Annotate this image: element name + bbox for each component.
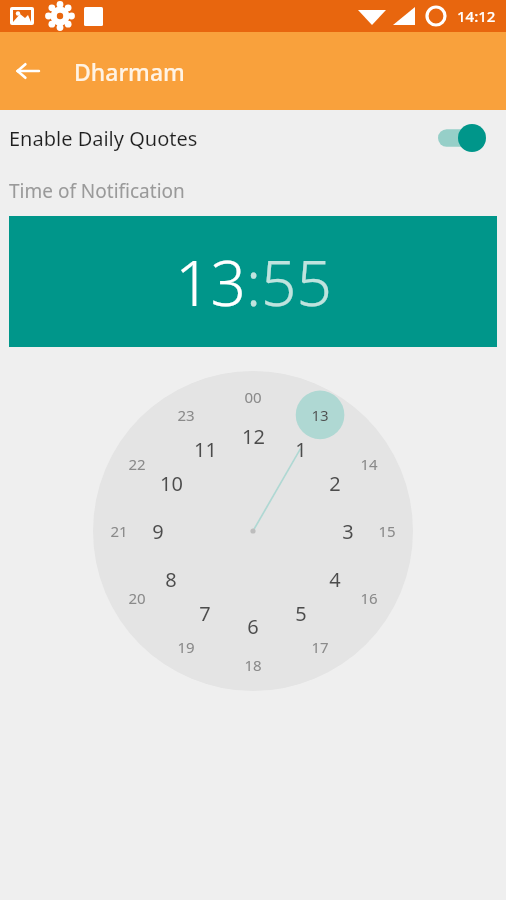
staticText: 13:55 (175, 240, 332, 324)
button[interactable]: 9 (136, 509, 180, 553)
button[interactable]: 17 (298, 625, 342, 669)
staticText: 4 (329, 566, 341, 593)
button[interactable]: 19 (164, 625, 208, 669)
staticText: 2 (329, 470, 341, 497)
button[interactable]: 10 (149, 461, 193, 505)
staticText: 20 (128, 588, 146, 608)
staticText: 8 (165, 566, 177, 593)
staticText: 00 (244, 387, 262, 407)
staticText: 18 (244, 655, 262, 675)
button[interactable]: 15 (365, 509, 409, 553)
staticText: 17 (311, 637, 329, 657)
staticText: 14:12 (457, 6, 496, 26)
button[interactable]: 13 (298, 393, 342, 437)
button[interactable]: 4 (313, 557, 357, 601)
staticText: 9 (152, 518, 164, 545)
button[interactable]: 22 (115, 442, 159, 486)
button[interactable]: 1 (279, 427, 323, 471)
button[interactable]: 21 (97, 509, 141, 553)
staticText: Time of Notification (9, 178, 185, 204)
button[interactable]: 23 (164, 393, 208, 437)
button[interactable]: 3 (326, 509, 370, 553)
staticText: 23 (177, 405, 195, 425)
button[interactable]: 12 (231, 414, 275, 458)
staticText: 22 (128, 454, 146, 474)
button[interactable]: 13:55 (9, 216, 497, 347)
button[interactable]: 5 (279, 591, 323, 635)
button[interactable]: 14 (347, 442, 391, 486)
staticText: 19 (177, 637, 195, 657)
staticText: 3 (342, 518, 354, 545)
staticText: 7 (199, 600, 211, 627)
staticText: 12 (242, 423, 265, 450)
staticText: 13 (311, 405, 329, 425)
button[interactable]: Back (0, 43, 56, 99)
button[interactable]: 00 (231, 375, 275, 419)
staticText: 5 (295, 600, 307, 627)
button[interactable]: 2 (313, 461, 357, 505)
button[interactable]: 18 (231, 643, 275, 687)
button[interactable]: 6 (231, 604, 275, 648)
staticText: 11 (194, 436, 217, 463)
staticText: 15 (378, 521, 396, 541)
button[interactable]: 11 (183, 427, 227, 471)
staticText: 1 (295, 436, 307, 463)
staticText: 21 (110, 521, 128, 541)
button[interactable]: 20 (115, 576, 159, 620)
staticText: 10 (160, 470, 183, 497)
button[interactable]: 16 (347, 576, 391, 620)
staticText: Dharmam (74, 56, 185, 87)
staticText: 16 (360, 588, 378, 608)
button[interactable]: 8 (149, 557, 193, 601)
staticText: Enable Daily Quotes (9, 125, 198, 152)
button[interactable]: 7 (183, 591, 227, 635)
staticText: 14 (360, 454, 378, 474)
staticText: 6 (247, 613, 259, 640)
button[interactable]: Enable Daily Quotes (0, 110, 506, 166)
